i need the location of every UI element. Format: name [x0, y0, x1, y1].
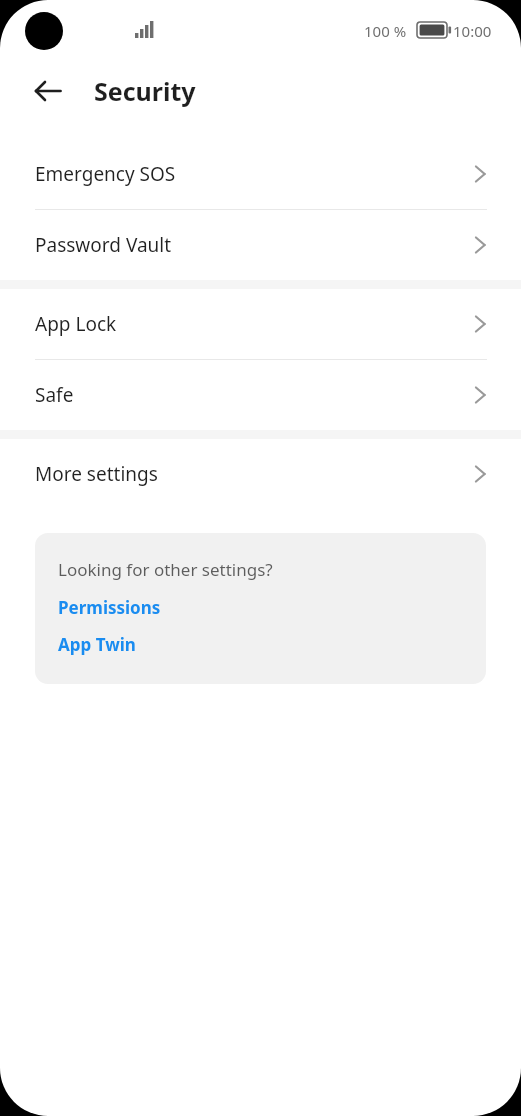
button[interactable]: Password Vault — [0, 210, 521, 280]
staticText: 10:00 — [453, 21, 492, 41]
staticText: More settings — [35, 461, 474, 487]
button[interactable]: App Lock — [0, 289, 521, 359]
button[interactable]: More settings — [0, 439, 521, 509]
button[interactable]: Safe — [0, 360, 521, 430]
button[interactable]: Permissions — [58, 596, 161, 619]
staticText: Emergency SOS — [35, 161, 474, 187]
button[interactable]: Emergency SOS — [0, 139, 521, 209]
staticText: App Lock — [35, 311, 474, 337]
staticText: Looking for other settings? — [58, 558, 273, 581]
staticText: Password Vault — [35, 232, 474, 258]
staticText: Security — [94, 74, 196, 108]
button[interactable]: Back — [24, 67, 72, 115]
staticText: 100 % — [364, 21, 407, 41]
staticText: Safe — [35, 382, 474, 408]
button[interactable]: App Twin — [58, 633, 136, 656]
